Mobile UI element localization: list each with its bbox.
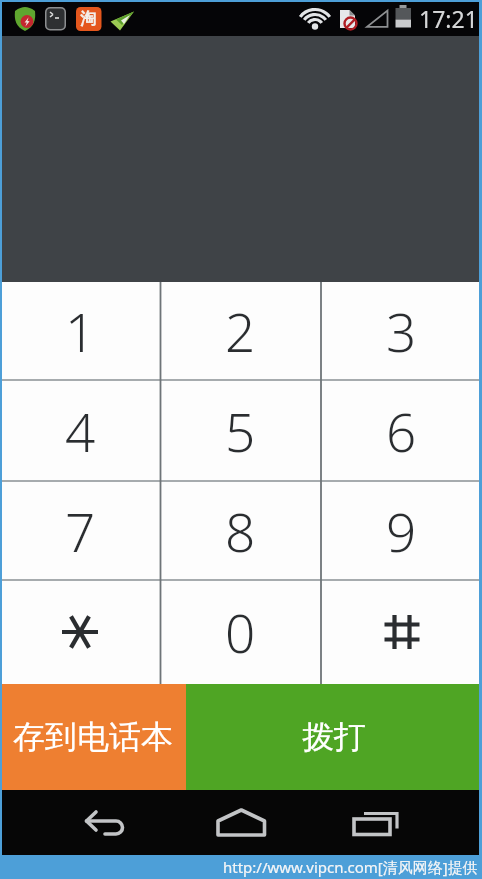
staticText: 9	[386, 495, 417, 567]
button[interactable]	[286, 793, 376, 853]
button[interactable]	[106, 793, 196, 853]
staticText: 拨打	[302, 717, 366, 757]
button[interactable]	[0, 580, 160, 684]
staticText: 7	[65, 495, 96, 567]
button[interactable]: 3	[321, 282, 482, 380]
button[interactable]: 1	[0, 282, 160, 380]
button[interactable]: 6	[321, 380, 482, 481]
staticText: 6	[386, 395, 417, 467]
staticText: 4	[65, 395, 96, 467]
button[interactable]: 7	[0, 481, 160, 580]
staticText: http://www.vipcn.com[清风网络]提供	[223, 857, 478, 877]
button[interactable]: 拨打	[186, 684, 482, 790]
button[interactable]: 存到电话本	[0, 684, 186, 790]
button[interactable]: 0	[160, 580, 321, 684]
staticText: 8	[225, 495, 256, 567]
button[interactable]: 5	[160, 380, 321, 481]
button[interactable]: 9	[321, 481, 482, 580]
button[interactable]	[321, 580, 482, 684]
staticText: 2	[225, 295, 256, 367]
staticText: 3	[386, 295, 417, 367]
staticText: 存到电话本	[13, 717, 173, 757]
button[interactable]: 8	[160, 481, 321, 580]
staticText: 1	[65, 295, 96, 367]
staticText: 5	[225, 395, 256, 467]
button[interactable]: 2	[160, 282, 321, 380]
staticText: 0	[225, 596, 256, 668]
button[interactable]	[196, 793, 286, 853]
staticText: 淘	[80, 9, 96, 29]
button[interactable]: 4	[0, 380, 160, 481]
staticText: 17:21	[419, 3, 478, 34]
